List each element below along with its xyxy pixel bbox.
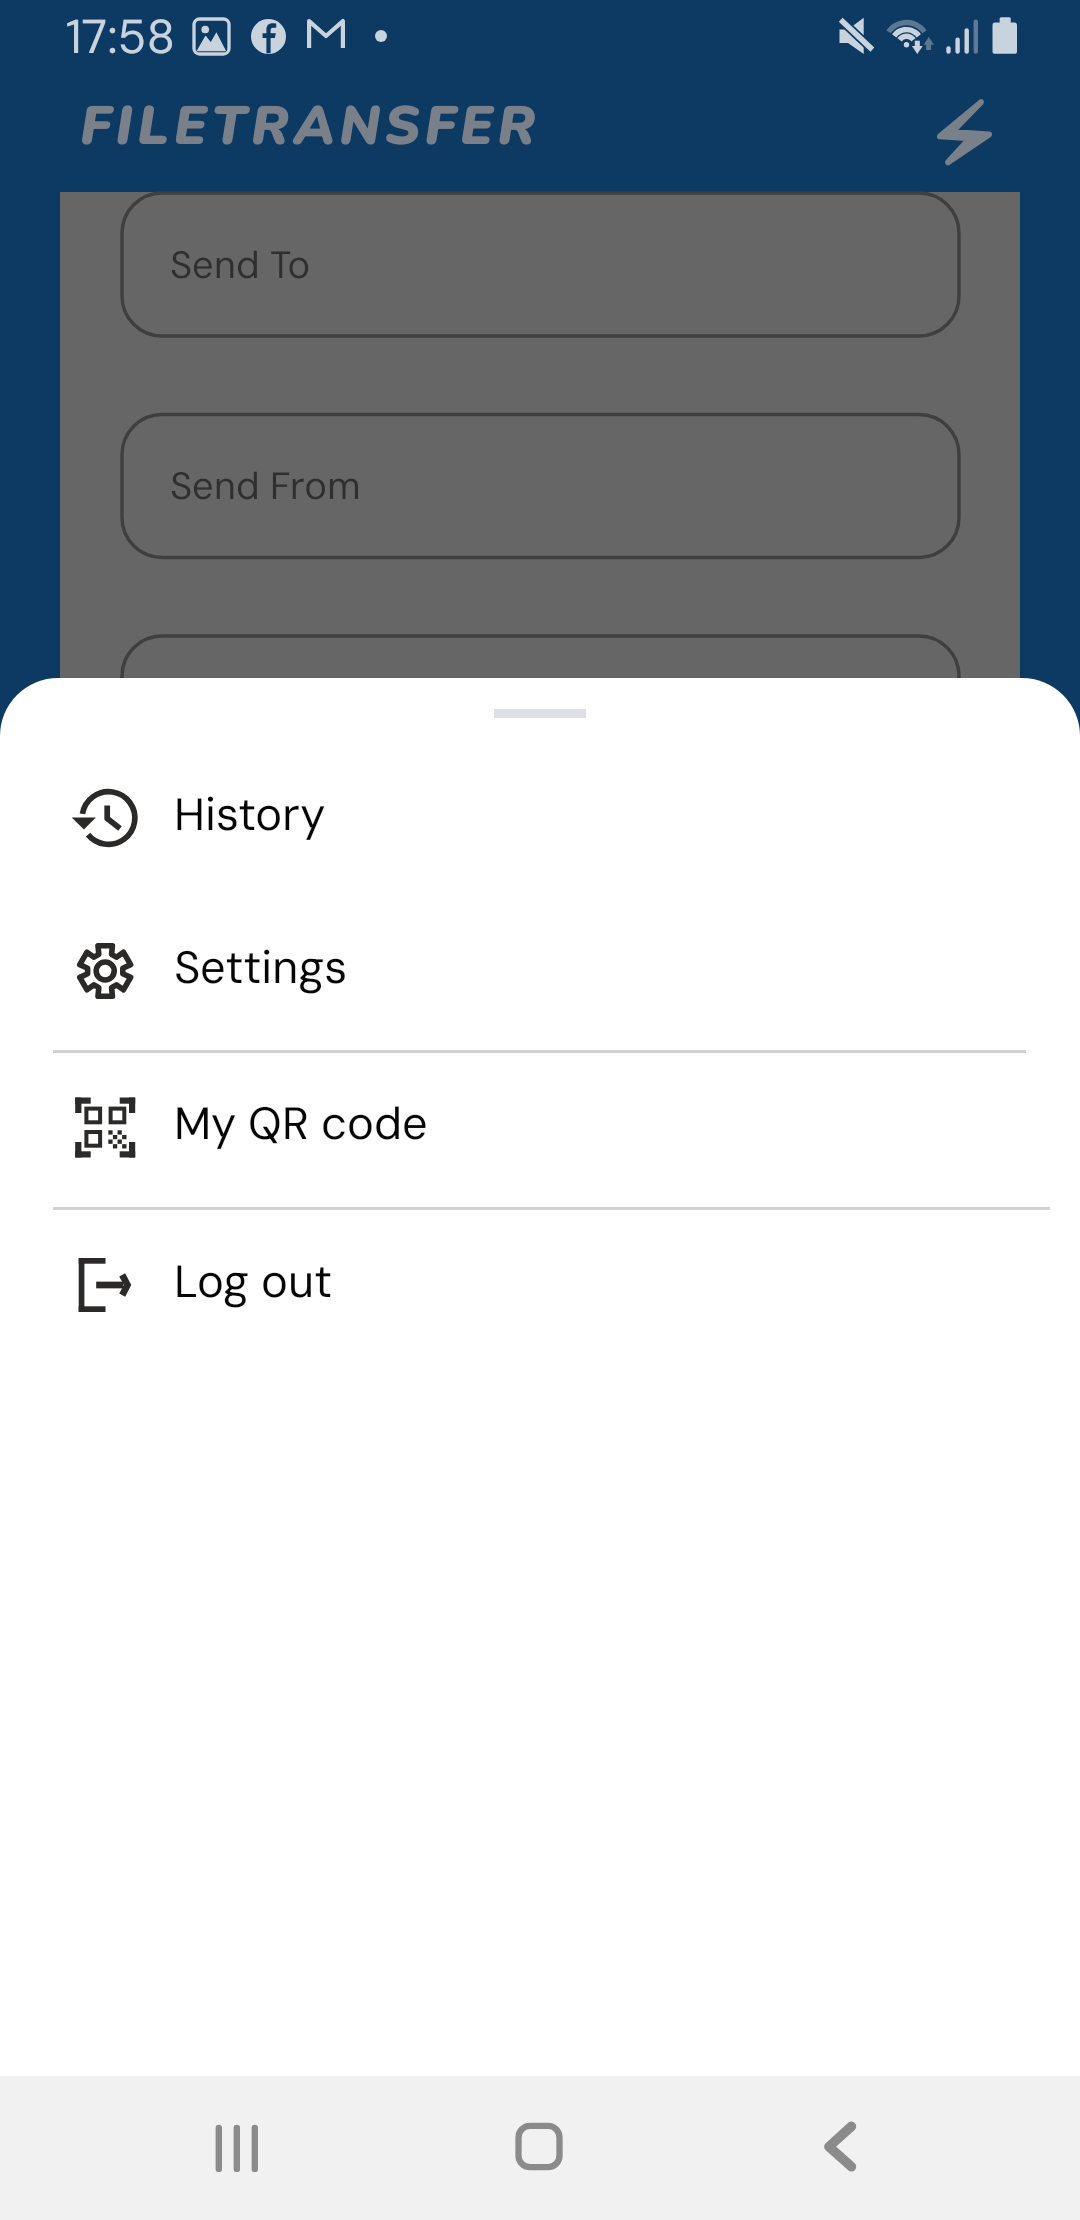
button[interactable] <box>0 753 1080 883</box>
button[interactable]: Back <box>751 2076 931 2220</box>
button[interactable]: Recents <box>146 2076 326 2220</box>
button[interactable] <box>0 1220 1080 1350</box>
button[interactable] <box>0 1062 1080 1192</box>
button[interactable]: Home <box>450 2076 630 2220</box>
button[interactable] <box>0 906 1080 1036</box>
button[interactable]: Quick send <box>920 82 1020 182</box>
